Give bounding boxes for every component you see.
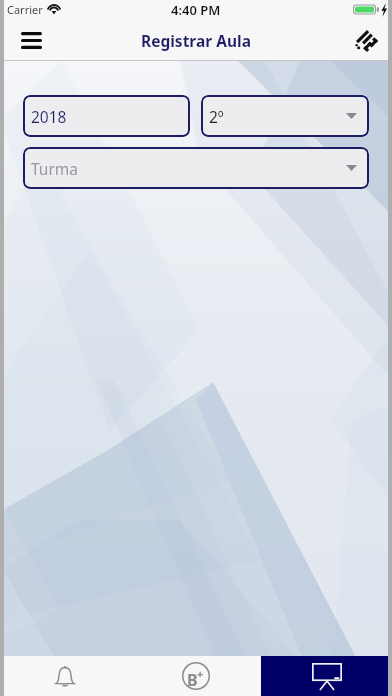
button[interactable]: App logo	[342, 20, 392, 61]
staticText: 2018	[31, 106, 67, 127]
staticText: 4:40 PM	[171, 1, 221, 19]
button[interactable]: Menu	[0, 20, 63, 61]
staticText: Registrar Aula	[141, 30, 251, 51]
button[interactable]: 2018	[23, 95, 190, 137]
button[interactable]: Notifications	[0, 656, 130, 696]
staticText: 2º	[209, 106, 224, 127]
button[interactable]: Register class	[261, 656, 392, 696]
button[interactable]: Grades	[130, 656, 261, 696]
staticText: Carrier	[7, 2, 43, 17]
button[interactable]: Turma	[23, 147, 369, 189]
button[interactable]: 2º	[201, 95, 369, 137]
staticText: +	[197, 666, 204, 681]
staticText: Turma	[31, 158, 79, 179]
staticText: B	[187, 669, 198, 691]
